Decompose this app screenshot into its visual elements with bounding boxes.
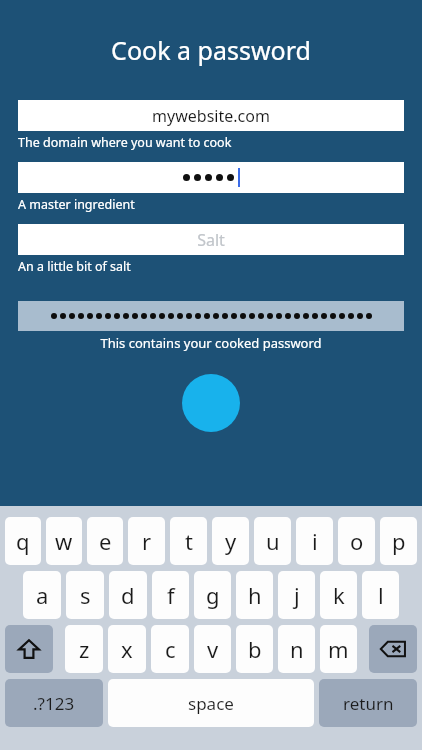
staticText: a — [36, 580, 49, 610]
button[interactable]: Shift — [5, 625, 53, 673]
button[interactable]: u — [254, 517, 291, 565]
staticText: z — [79, 634, 90, 664]
button[interactable]: Cook password — [182, 374, 240, 432]
staticText: n — [290, 634, 304, 664]
button[interactable]: p — [380, 517, 417, 565]
staticText: m — [328, 634, 349, 664]
button[interactable]: o — [338, 517, 375, 565]
staticText: k — [333, 580, 345, 610]
staticText: mywebsite.com — [152, 105, 270, 127]
staticText: j — [294, 580, 300, 610]
staticText: i — [312, 526, 318, 556]
button[interactable]: .?123 — [5, 679, 103, 727]
button[interactable]: Salt — [18, 224, 404, 255]
button[interactable]: r — [128, 517, 165, 565]
button[interactable]: j — [278, 571, 315, 619]
staticText: f — [167, 580, 175, 610]
staticText: b — [248, 634, 262, 664]
staticText: This contains your cooked password — [100, 334, 322, 352]
staticText: s — [80, 580, 91, 610]
staticText: Cook a password — [111, 33, 311, 67]
staticText: g — [206, 580, 220, 610]
staticText: An a little bit of salt — [18, 258, 131, 275]
button[interactable]: e — [87, 517, 123, 565]
button[interactable]: f — [152, 571, 189, 619]
button[interactable]: z — [65, 625, 103, 673]
button[interactable]: w — [46, 517, 82, 565]
button[interactable]: g — [194, 571, 231, 619]
staticText: o — [350, 526, 364, 556]
button[interactable]: b — [236, 625, 273, 673]
staticText: y — [225, 526, 237, 556]
staticText: return — [343, 692, 394, 715]
staticText: v — [207, 634, 219, 664]
staticText: d — [121, 580, 135, 610]
button[interactable]: h — [236, 571, 273, 619]
staticText: r — [142, 526, 152, 556]
staticText: h — [248, 580, 262, 610]
staticText: .?123 — [33, 692, 75, 715]
button[interactable] — [18, 162, 404, 193]
staticText: u — [266, 526, 280, 556]
staticText: Salt — [197, 229, 225, 251]
button[interactable]: q — [5, 517, 41, 565]
staticText: A master ingredient — [18, 196, 135, 213]
staticText: space — [188, 692, 234, 715]
staticText: w — [55, 526, 73, 556]
staticText: t — [185, 526, 193, 556]
button[interactable]: d — [109, 571, 147, 619]
button[interactable]: i — [296, 517, 333, 565]
staticText: c — [165, 634, 176, 664]
staticText: The domain where you want to cook — [18, 134, 232, 151]
staticText: e — [99, 526, 112, 556]
button[interactable]: return — [319, 679, 417, 727]
staticText: x — [121, 634, 133, 664]
button[interactable]: Backspace — [369, 625, 417, 673]
button[interactable]: m — [320, 625, 357, 673]
staticText: p — [392, 526, 406, 556]
button[interactable]: mywebsite.com — [18, 100, 404, 131]
button[interactable]: n — [278, 625, 315, 673]
button[interactable]: s — [66, 571, 104, 619]
button[interactable]: v — [194, 625, 231, 673]
button[interactable]: k — [320, 571, 357, 619]
button[interactable]: space — [108, 679, 314, 727]
staticText: l — [378, 580, 384, 610]
button[interactable]: y — [212, 517, 249, 565]
button[interactable]: a — [23, 571, 61, 619]
button[interactable]: l — [362, 571, 399, 619]
staticText: q — [16, 526, 30, 556]
button[interactable]: x — [108, 625, 146, 673]
button[interactable]: c — [151, 625, 189, 673]
button[interactable]: t — [170, 517, 207, 565]
button[interactable] — [18, 301, 404, 331]
